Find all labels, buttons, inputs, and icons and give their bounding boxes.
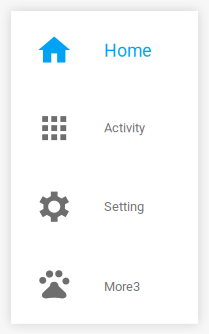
button[interactable]: Setting	[11, 167, 198, 246]
staticText: Activity	[104, 120, 145, 135]
staticText: More3	[104, 279, 140, 294]
button[interactable]: Activity	[11, 89, 198, 167]
staticText: Setting	[104, 199, 144, 214]
button[interactable]: Home	[11, 11, 198, 89]
button[interactable]: More3	[11, 246, 198, 324]
staticText: Home	[104, 40, 151, 61]
